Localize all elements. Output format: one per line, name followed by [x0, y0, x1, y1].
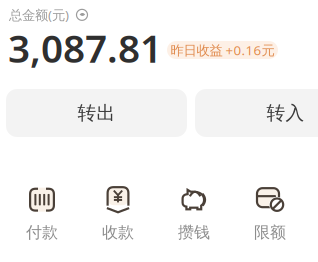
button[interactable]: 付款	[4, 183, 80, 245]
staticText: 昨日收益 +0.16元	[170, 41, 274, 59]
button[interactable]: 限额	[232, 183, 308, 245]
button[interactable]: 收款	[80, 183, 156, 245]
staticText: 转入	[266, 101, 304, 124]
staticText: 3,087.81	[8, 22, 162, 73]
staticText: 收款	[102, 223, 134, 242]
button[interactable]: 转入	[195, 89, 318, 137]
staticText: 转出	[77, 101, 115, 124]
button[interactable]: 隐藏金额	[76, 9, 88, 21]
button[interactable]: 攒钱	[156, 183, 232, 245]
staticText: 付款	[26, 223, 58, 242]
staticText: 总金额(元)	[9, 6, 69, 24]
button[interactable]: 转出	[6, 89, 187, 137]
staticText: 攒钱	[178, 223, 210, 242]
staticText: 限额	[254, 223, 286, 242]
